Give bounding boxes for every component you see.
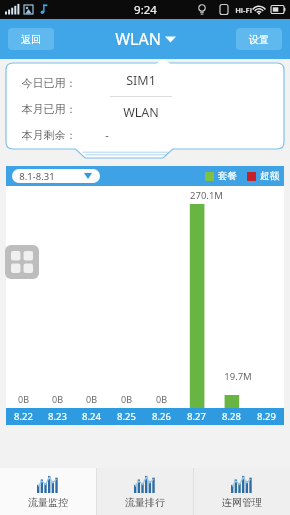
staticText: 19.7M <box>224 370 252 383</box>
staticText: 套餐 <box>218 170 237 182</box>
staticText: 设置 <box>249 33 269 46</box>
staticText: 流量监控 <box>28 496 68 509</box>
button[interactable]: Apps <box>5 245 39 279</box>
staticText: 8.24 <box>82 410 101 423</box>
staticText: 8.27 <box>187 410 206 423</box>
staticText: 0B <box>156 393 167 405</box>
staticText: 270.1M <box>190 189 223 202</box>
staticText: 8.26 <box>152 410 171 423</box>
staticText: 0B <box>86 393 97 405</box>
staticText: Hi-Fi <box>235 5 252 15</box>
staticText: 8.28 <box>222 410 241 423</box>
staticText: 超额 <box>260 170 279 182</box>
button[interactable]: 8.1-8.31 <box>12 169 100 183</box>
button[interactable]: 流量监控 <box>0 468 96 515</box>
button[interactable]: WLAN <box>115 28 176 50</box>
staticText: 0B <box>52 393 63 405</box>
staticText: 19. <box>116 75 132 90</box>
button[interactable]: SIM1 <box>110 65 172 96</box>
staticText: 0B <box>18 393 29 405</box>
staticText: 8.29 <box>257 410 276 423</box>
button[interactable]: 返回 <box>8 28 54 50</box>
staticText: 8.25 <box>117 410 136 423</box>
staticText: 8.23 <box>48 410 67 423</box>
staticText: 0B <box>121 393 132 405</box>
staticText: 连网管理 <box>222 496 262 509</box>
staticText: 流量排行 <box>125 496 165 509</box>
staticText: 本月已用： <box>16 102 82 116</box>
staticText: 317. <box>110 101 132 116</box>
staticText: 本月剩余： <box>16 128 82 142</box>
button[interactable]: 连网管理 <box>194 468 290 515</box>
staticText: 9:24 <box>134 2 157 18</box>
button[interactable]: 流量排行 <box>97 468 193 515</box>
staticText: WLAN <box>123 104 159 121</box>
staticText: - <box>105 127 109 142</box>
staticText: WLAN <box>115 28 161 50</box>
button[interactable]: WLAN <box>110 97 172 128</box>
staticText: SIM1 <box>126 72 156 89</box>
staticText: 返回 <box>21 33 41 46</box>
staticText: 8.1-8.31 <box>19 170 55 183</box>
staticText: 8.22 <box>14 410 33 423</box>
button[interactable]: 设置 <box>236 28 282 50</box>
staticText: 今日已用： <box>16 76 82 90</box>
